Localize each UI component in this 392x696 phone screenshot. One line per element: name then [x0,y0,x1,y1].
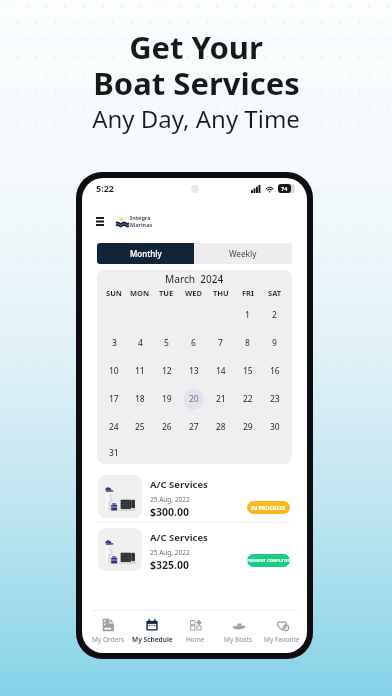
button[interactable]: 16 [270,365,280,377]
button[interactable]: 24 [109,421,119,433]
staticText: My Schedule [132,635,173,644]
button[interactable]: 9 [272,337,277,349]
button[interactable]: 3 [112,337,117,349]
staticText: Boat Services [93,62,300,104]
button[interactable]: 10 [109,365,119,377]
button[interactable]: 11 [135,365,145,377]
staticText: A/C Services [150,531,208,544]
button[interactable]: 30 [270,421,280,433]
staticText: Home [186,635,205,644]
button[interactable]: 4 [138,337,143,349]
button[interactable]: 8 [245,337,250,349]
staticText: Weekly [229,248,257,259]
staticText: $325.00 [150,558,189,572]
staticText: Marinas [130,221,153,228]
staticText: MON [130,288,150,298]
staticText: Monthly [130,248,162,259]
staticText: WED [185,288,202,298]
button[interactable]: 18 [135,393,145,405]
staticText: FRI [242,288,254,298]
button[interactable]: 6 [191,337,196,349]
staticText: $300.00 [150,505,189,519]
staticText: 5:22 [96,182,114,194]
staticText: PAYMENT COMPLETED [247,558,290,563]
button[interactable]: 17 [109,393,119,405]
staticText: Integra [130,214,151,221]
button[interactable]: 28 [216,421,226,433]
staticText: 25 Aug, 2022 [150,495,190,504]
button[interactable]: 12 [162,365,172,377]
staticText: SUN [106,288,122,298]
button[interactable]: 14 [216,365,226,377]
button[interactable]: 26 [162,421,172,433]
button[interactable]: 2 [272,309,277,321]
staticText: 74 [281,185,288,192]
button[interactable]: Home [174,611,217,653]
staticText: 25 Aug, 2022 [150,548,190,557]
staticText: Get Your [129,26,263,68]
button[interactable]: 22 [243,393,253,405]
button[interactable]: 27 [189,421,199,433]
button[interactable]: 25 [135,421,145,433]
staticText: A/C Services [150,478,208,491]
staticText: Any Day, Any Time [92,102,300,135]
button[interactable]: 31 [109,447,119,459]
button[interactable]: My Boats [217,611,260,653]
staticText: My Favorite [264,635,300,644]
button[interactable]: 21 [216,393,226,405]
button[interactable]: PAYMENT COMPLETED [247,554,290,567]
button[interactable]: My Schedule [130,611,174,653]
button[interactable]: Menu [94,215,106,227]
button[interactable]: 23 [270,393,280,405]
button[interactable]: 7 [218,337,223,349]
staticText: March 2024 [165,272,224,284]
button[interactable]: 15 [243,365,253,377]
staticText: SAT [268,288,282,298]
staticText: THU [213,288,229,298]
button[interactable]: IN PROGRESS [247,501,290,514]
button[interactable]: A/C Services [82,470,307,523]
button[interactable]: 13 [189,365,199,377]
staticText: TUE [159,288,174,298]
button[interactable]: 1 [245,309,250,321]
button[interactable]: My Orders [86,611,130,653]
staticText: My Boats [224,635,253,644]
button[interactable]: Monthly [97,243,194,264]
button[interactable]: My Favorite [260,611,303,653]
button[interactable]: 5 [164,337,169,349]
button[interactable]: 29 [243,421,253,433]
staticText: IN PROGRESS [251,504,286,511]
button[interactable]: 20 [189,393,199,405]
button[interactable]: Weekly [194,243,292,264]
button[interactable]: A/C Services [82,523,307,576]
button[interactable]: 19 [162,393,172,405]
staticText: My Orders [92,635,124,644]
